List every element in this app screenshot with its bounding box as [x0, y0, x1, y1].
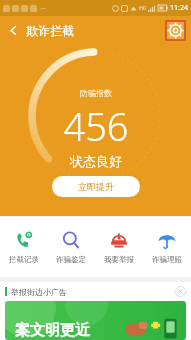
button[interactable]: 诈骗理赔 [143, 226, 191, 268]
staticText: 456 [63, 100, 129, 152]
staticText: 案文明更近 [15, 321, 90, 340]
staticText: 防骗指数 [80, 88, 112, 98]
staticText: 拦截记录 [9, 255, 39, 264]
button[interactable]: 拦截记录 [0, 226, 47, 268]
button[interactable]: Settings [166, 21, 185, 40]
staticText: 举报街边小广告 [11, 287, 67, 297]
button[interactable]: Close [175, 286, 186, 297]
button[interactable]: 诈骗鉴定 [47, 226, 95, 268]
staticText: 诈骗鉴定 [56, 255, 86, 264]
staticText: 欺诈拦截 [26, 23, 74, 38]
staticText: H0 [139, 5, 146, 12]
button[interactable]: 我要举报 [95, 226, 143, 268]
button[interactable]: Back [0, 17, 26, 43]
staticText: 我要举报 [104, 255, 134, 264]
button[interactable]: 立即提升 [52, 176, 140, 197]
staticText: 立即提升 [78, 181, 114, 192]
button[interactable]: 案文明更近 [5, 301, 186, 340]
staticText: 状态良好 [70, 153, 122, 169]
staticText: 11:24 [170, 3, 188, 13]
staticText: 诈骗理赔 [152, 255, 182, 264]
